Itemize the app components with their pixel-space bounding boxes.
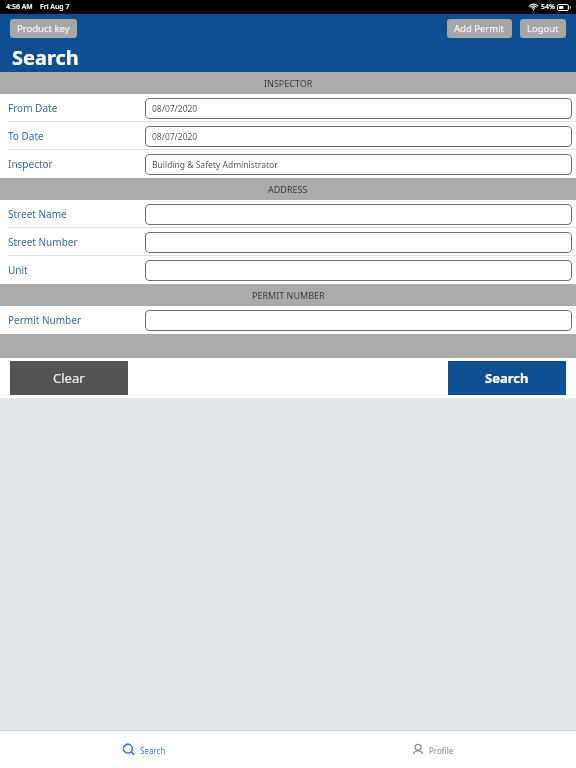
- button[interactable]: Product key: [10, 19, 77, 38]
- staticText: From Date: [8, 101, 58, 115]
- other: Profile: [411, 743, 425, 757]
- staticText: ADDRESS: [268, 183, 308, 195]
- button[interactable]: Clear: [10, 361, 128, 395]
- button[interactable]: Permit Number: [0, 306, 576, 334]
- staticText: 08/07/2020: [152, 103, 198, 115]
- staticText: Permit Number: [8, 313, 82, 327]
- staticText: To Date: [8, 129, 44, 143]
- staticText: Building & Safety Administrator: [152, 159, 278, 171]
- staticText: 08/07/2020: [152, 131, 198, 143]
- button[interactable]: Add Permit: [447, 19, 512, 38]
- staticText: Inspector: [8, 157, 53, 171]
- button[interactable]: Inspector: [0, 150, 576, 178]
- staticText: Street Number: [8, 235, 78, 249]
- button[interactable]: Logout: [520, 19, 566, 38]
- staticText: Logout: [527, 22, 559, 35]
- staticText: PERMIT NUMBER: [252, 289, 325, 301]
- staticText: Search: [140, 745, 166, 756]
- button[interactable]: Street Number: [0, 228, 576, 256]
- staticText: Add Permit: [454, 22, 505, 35]
- staticText: Unit: [8, 263, 28, 277]
- button[interactable]: To Date: [0, 122, 576, 150]
- button[interactable]: Profile: [401, 739, 464, 761]
- staticText: 54%: [541, 2, 555, 12]
- staticText: Search: [485, 369, 529, 387]
- staticText: 4:56 AM: [6, 2, 33, 12]
- button[interactable]: Search: [112, 739, 176, 761]
- other: Search: [122, 743, 136, 757]
- staticText: Search: [12, 44, 79, 71]
- staticText: Profile: [429, 745, 454, 756]
- button[interactable]: Search: [448, 361, 566, 395]
- button[interactable]: From Date: [0, 94, 576, 122]
- staticText: Fri Aug 7: [40, 2, 70, 12]
- staticText: Street Name: [8, 207, 67, 221]
- staticText: Clear: [53, 369, 85, 387]
- button[interactable]: Street Name: [0, 200, 576, 228]
- staticText: INSPECTOR: [264, 77, 313, 89]
- button[interactable]: Unit: [0, 256, 576, 284]
- staticText: Product key: [17, 22, 70, 35]
